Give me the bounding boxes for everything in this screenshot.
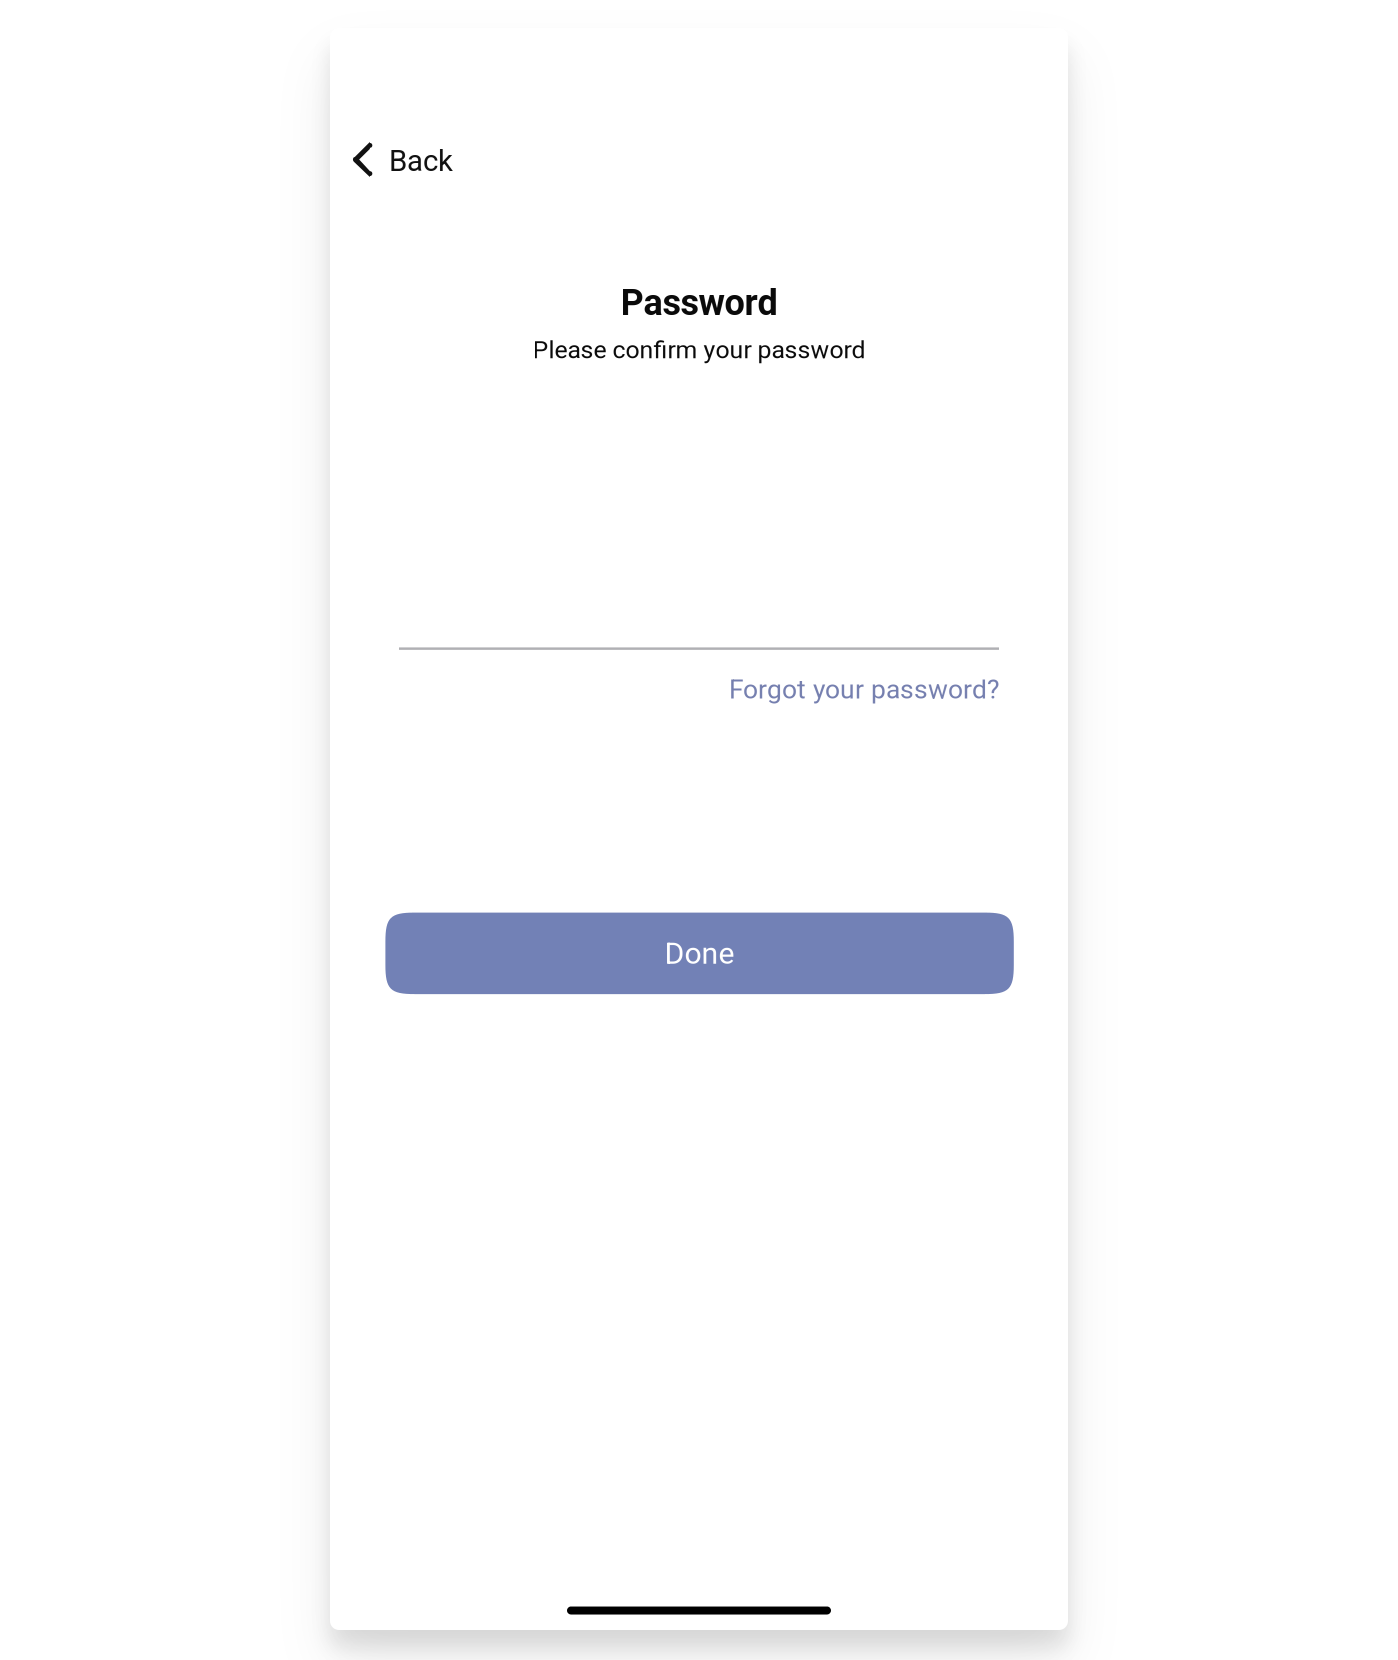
staticText: Back [389,144,453,178]
staticText: Forgot your password? [729,674,999,705]
staticText: Done [665,936,735,971]
button[interactable]: Done [385,913,1014,994]
staticText: Please confirm your password [532,335,865,364]
staticText: Password [620,281,777,324]
button[interactable]: Forgot your password? [729,650,999,711]
button[interactable]: Back [330,131,467,191]
